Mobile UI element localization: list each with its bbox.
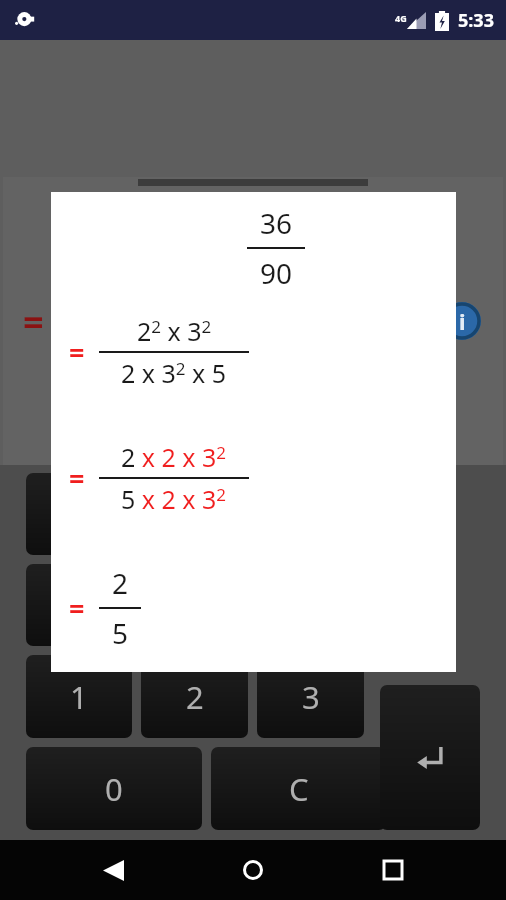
button[interactable]: 1 (26, 655, 132, 738)
button[interactable]: 4 (26, 564, 132, 646)
staticText: 2 (186, 676, 204, 718)
button[interactable]: Recent apps (366, 843, 420, 897)
staticText: 0 (105, 768, 123, 810)
staticText: = (69, 334, 85, 371)
staticText: 90 (260, 254, 293, 292)
staticText: = (23, 297, 44, 346)
staticText: 4 (70, 584, 88, 626)
staticText: C (289, 768, 309, 810)
staticText: 2 (112, 564, 129, 602)
staticText: 1 (70, 676, 88, 718)
button[interactable]: 7 (26, 473, 132, 555)
button[interactable]: C (211, 747, 386, 830)
button[interactable]: 3 (257, 655, 364, 738)
staticText: 36 (260, 204, 293, 242)
button[interactable]: Enter (380, 685, 480, 830)
staticText: 5:33 (458, 8, 494, 33)
staticText: 2 x 32 x 5 (121, 356, 227, 390)
staticText: 8 (186, 493, 204, 535)
staticText: 22 x 32 (137, 314, 212, 348)
staticText: 3 (302, 676, 320, 718)
staticText: i (459, 306, 466, 336)
staticText: 5 x 2 x 32 (121, 482, 227, 516)
staticText: = (69, 590, 85, 627)
button[interactable]: Back (86, 843, 140, 897)
button[interactable]: Home (226, 843, 280, 897)
button[interactable]: 8 (141, 473, 248, 555)
button[interactable]: 0 (26, 747, 202, 830)
button[interactable]: 2 (141, 655, 248, 738)
button[interactable]: Info (443, 302, 481, 340)
staticText: 5 (112, 614, 129, 652)
staticText: = (69, 460, 85, 497)
staticText: 4G (395, 12, 407, 24)
staticText: 2 x 2 x 32 (121, 440, 227, 474)
